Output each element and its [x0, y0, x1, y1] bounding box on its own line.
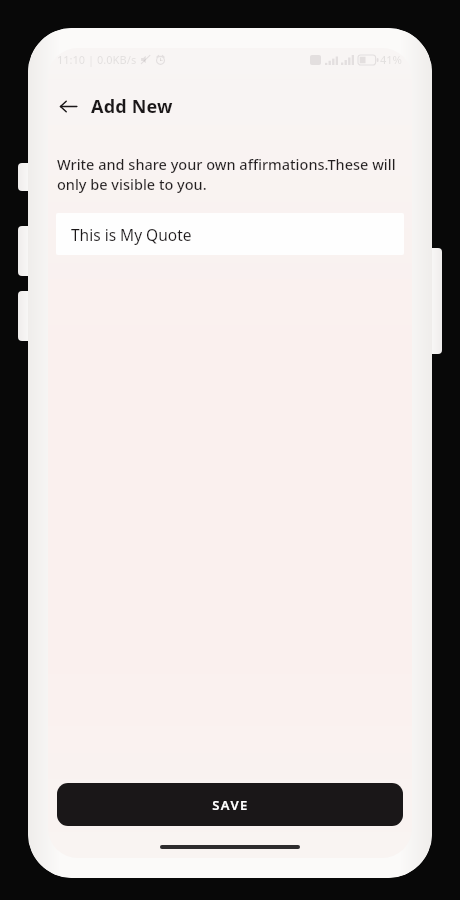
button[interactable]: SAVE — [57, 783, 403, 826]
staticText: 11:10 | 0.0KB/s — [57, 52, 137, 67]
staticText: This is My Quote — [71, 224, 192, 245]
staticText: Add New — [91, 94, 173, 119]
staticText: 41% — [380, 52, 402, 67]
button[interactable]: Back — [50, 88, 86, 124]
staticText: Write and share your own affirmations.Th… — [57, 154, 398, 194]
staticText: SAVE — [212, 796, 249, 814]
button[interactable]: This is My Quote — [56, 213, 404, 255]
